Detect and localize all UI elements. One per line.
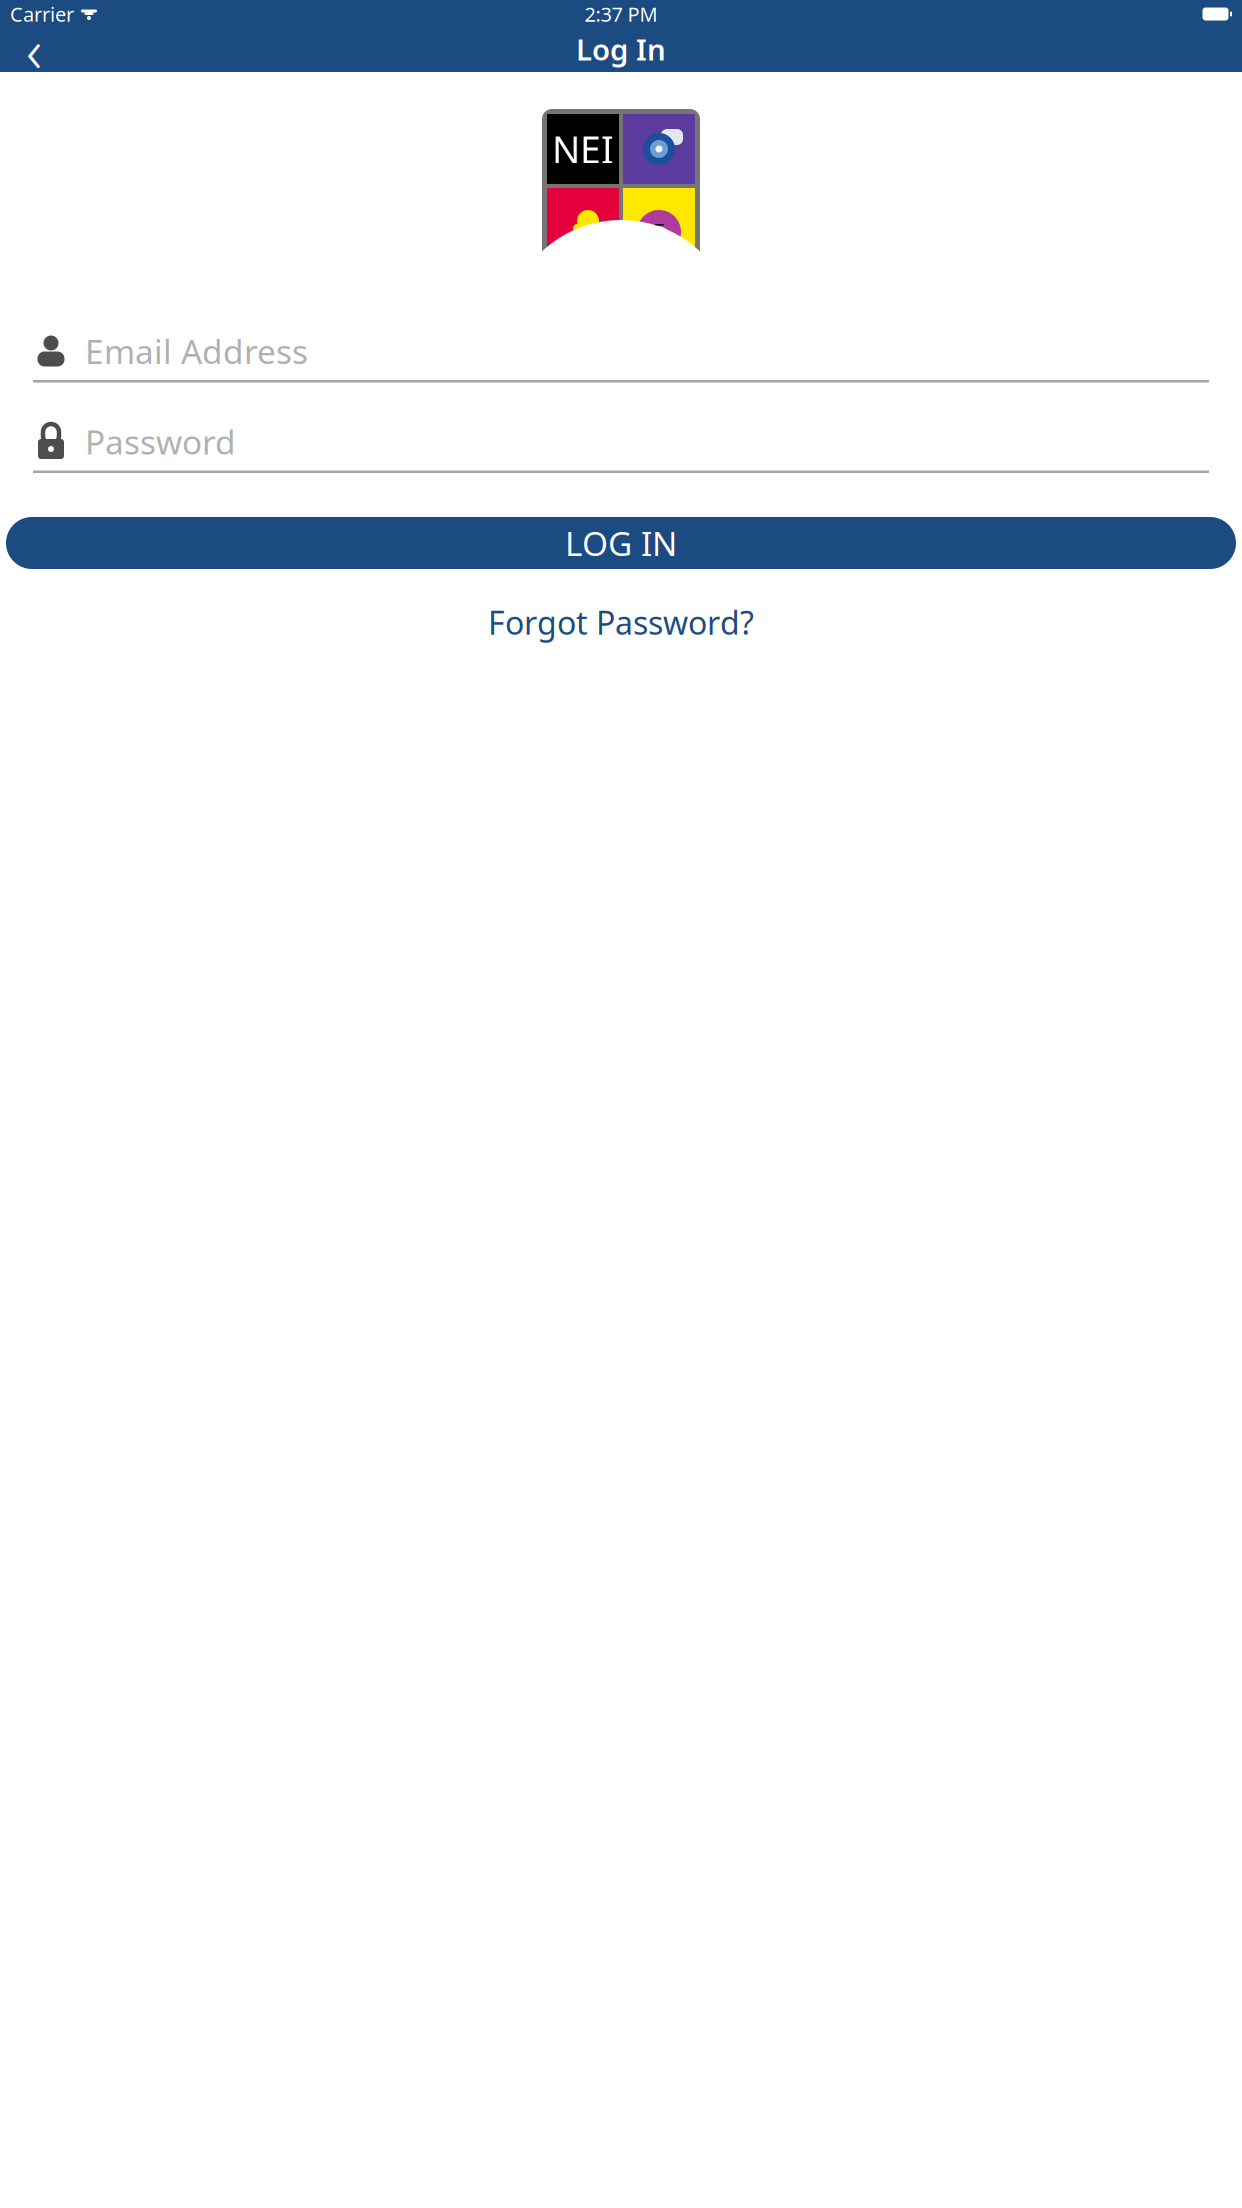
staticText: Log In <box>576 29 666 68</box>
staticText: Password <box>85 419 236 464</box>
staticText: LOG IN <box>565 521 677 565</box>
staticText: E <box>652 217 665 247</box>
button[interactable]: Back <box>0 27 56 71</box>
staticText: Carrier <box>10 1 74 27</box>
staticText: Email Address <box>85 329 308 373</box>
button[interactable]: Forgot Password? <box>464 591 778 653</box>
staticText: 2:37 PM <box>584 1 657 27</box>
staticText: NEI <box>552 124 614 174</box>
staticText: ‹ <box>26 8 42 90</box>
staticText: Forgot Password? <box>488 601 754 643</box>
button[interactable]: LOG IN <box>6 517 1236 569</box>
